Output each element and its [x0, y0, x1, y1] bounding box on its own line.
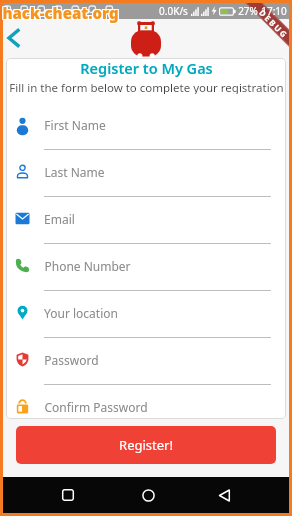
button[interactable] — [130, 477, 166, 513]
staticText: Email — [44, 211, 75, 227]
staticText: hack-cheat.org — [1, 3, 118, 23]
staticText: Password — [44, 352, 99, 368]
staticText: hack-cheat.org — [3, 3, 120, 23]
staticText: Your location — [44, 305, 118, 321]
staticText: 17:10 — [261, 4, 287, 18]
button[interactable]: Your location — [6, 289, 286, 338]
button[interactable]: Confirm Password — [6, 383, 286, 419]
staticText: hack-cheat.org — [2, 4, 119, 24]
staticText: Phone Number — [44, 258, 131, 274]
staticText: First Name — [44, 117, 106, 133]
button[interactable]: Register! — [16, 426, 276, 464]
button[interactable] — [0, 22, 32, 54]
staticText: Last Name — [44, 164, 105, 180]
staticText: 0.0K/s — [159, 4, 188, 18]
button[interactable]: Password — [6, 336, 286, 385]
staticText: Confirm Password — [44, 399, 148, 415]
staticText: DEBUG — [257, 7, 291, 41]
staticText: hack-cheat.org — [2, 2, 119, 22]
staticText: hack-cheat.org — [3, 4, 120, 24]
staticText: hack-cheat.org — [1, 4, 118, 24]
staticText: Fill in the form below to complete your … — [9, 80, 284, 94]
button[interactable] — [50, 477, 86, 513]
button[interactable]: Last Name — [6, 148, 286, 197]
staticText: Register! — [119, 436, 173, 454]
staticText: hack-cheat.org — [3, 2, 120, 22]
button[interactable] — [206, 477, 242, 513]
button[interactable]: First Name — [6, 101, 286, 150]
staticText: 27% — [238, 4, 258, 18]
staticText: hack-cheat.org — [1, 2, 118, 22]
staticText: hack-cheat.org — [2, 3, 119, 23]
button[interactable]: Email — [6, 195, 286, 244]
button[interactable]: Phone Number — [6, 242, 286, 291]
staticText: Register to My Gas — [80, 58, 213, 77]
